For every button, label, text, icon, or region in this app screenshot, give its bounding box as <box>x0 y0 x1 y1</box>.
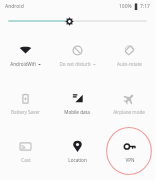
staticText: 7:17 <box>140 3 150 10</box>
staticText: Location <box>68 157 87 163</box>
staticText: Do not disturb <box>59 61 91 67</box>
staticText: Airplane mode <box>113 109 145 115</box>
staticText: Cast <box>21 157 31 163</box>
staticText: Android <box>5 3 24 10</box>
staticText: AndroidWifi <box>10 61 36 67</box>
button[interactable]: Location <box>51 127 103 175</box>
button[interactable]: Auto-rotate <box>103 31 155 79</box>
button[interactable] <box>0 13 155 29</box>
button[interactable]: VPN <box>103 127 155 175</box>
button[interactable]: Battery Saver <box>0 79 51 127</box>
button[interactable]: Cast <box>0 127 51 175</box>
button[interactable]: Do not disturb <box>51 31 103 79</box>
button[interactable]: AndroidWifi <box>0 31 51 79</box>
staticText: Auto-rotate <box>117 61 142 67</box>
staticText: VPN <box>125 157 135 163</box>
button[interactable]: Mobile data <box>51 79 103 127</box>
staticText: 100% <box>119 3 132 10</box>
staticText: Mobile data <box>64 109 90 115</box>
staticText: Battery Saver <box>11 109 40 115</box>
button[interactable]: Airplane mode <box>103 79 155 127</box>
